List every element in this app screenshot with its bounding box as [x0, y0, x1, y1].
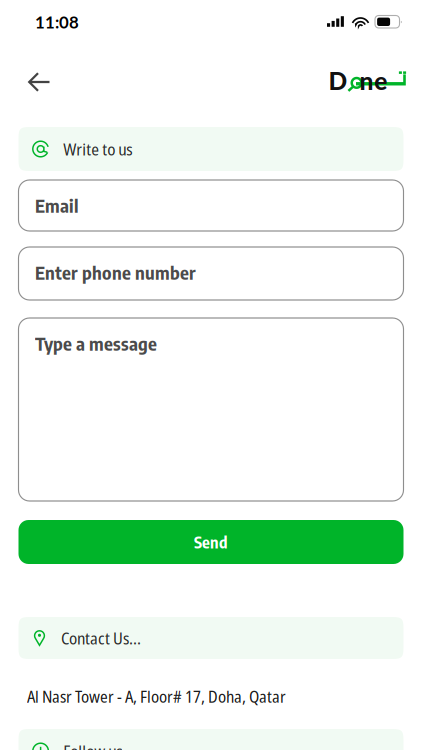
staticText: Type a message: [35, 331, 157, 355]
staticText: Write to us: [63, 138, 132, 160]
button[interactable]: Send: [18, 520, 403, 564]
staticText: Follow us: [63, 740, 122, 750]
staticText: Al Nasr Tower - A, Floor# 17, Doha, Qata…: [27, 685, 286, 708]
staticText: 11:08: [35, 12, 79, 32]
staticText: e: [374, 66, 387, 95]
staticText: Contact Us...: [61, 627, 141, 649]
staticText: D: [328, 66, 347, 95]
staticText: Enter phone number: [35, 260, 196, 284]
staticText: n: [359, 66, 373, 95]
staticText: Send: [194, 532, 228, 552]
button[interactable]: Back: [22, 60, 72, 104]
staticText: Email: [35, 193, 79, 217]
